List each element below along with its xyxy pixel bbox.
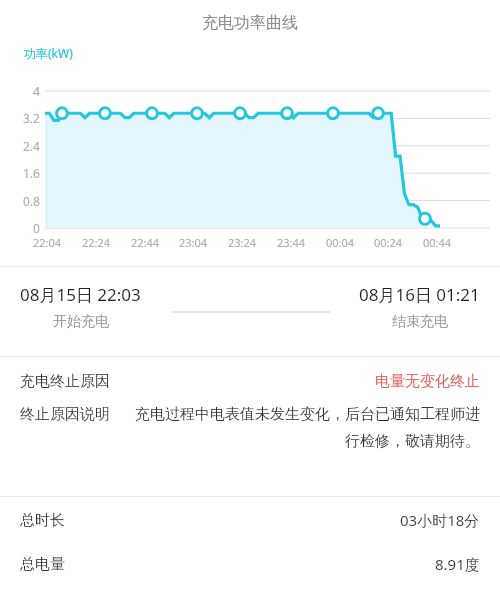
staticText: 电量无变化终止 bbox=[375, 372, 480, 391]
staticText: 充电终止原因 bbox=[20, 372, 110, 391]
staticText: 00:44 bbox=[423, 235, 452, 250]
staticText: 0 bbox=[33, 220, 40, 236]
staticText: 08月16日 01:21 bbox=[359, 283, 480, 306]
staticText: 3.2 bbox=[23, 110, 40, 126]
staticText: 总时长 bbox=[20, 511, 65, 530]
staticText: 1.6 bbox=[23, 165, 40, 181]
staticText: 23:04 bbox=[179, 235, 208, 250]
staticText: 0.8 bbox=[23, 193, 40, 209]
staticText: 22:24 bbox=[82, 235, 111, 250]
staticText: 总电量 bbox=[20, 555, 65, 574]
staticText: 23:24 bbox=[228, 235, 257, 250]
staticText: 22:04 bbox=[33, 235, 62, 250]
staticText: 2.4 bbox=[23, 138, 40, 154]
staticText: 22:44 bbox=[131, 235, 160, 250]
staticText: 结束充电 bbox=[392, 313, 448, 331]
staticText: 08月15日 22:03 bbox=[20, 283, 141, 306]
staticText: 00:04 bbox=[326, 235, 355, 250]
staticText: 充电功率曲线 bbox=[202, 13, 298, 33]
staticText: 23:44 bbox=[277, 235, 306, 250]
staticText: 功率(kW) bbox=[24, 45, 73, 61]
staticText: 终止原因说明 bbox=[20, 405, 110, 424]
staticText: 充电过程中电表值未发生变化，后台已通知工程师进行检修，敬请期待。 bbox=[122, 405, 480, 451]
staticText: 03小时18分 bbox=[400, 510, 480, 530]
staticText: 8.91度 bbox=[435, 554, 480, 574]
staticText: 00:24 bbox=[374, 235, 403, 250]
staticText: 开始充电 bbox=[53, 313, 109, 331]
button[interactable]: 总时长 bbox=[0, 497, 500, 543]
staticText: 4 bbox=[33, 83, 40, 99]
button[interactable]: 总电量 bbox=[0, 543, 500, 585]
button[interactable]: 充电终止原因 bbox=[0, 357, 500, 405]
